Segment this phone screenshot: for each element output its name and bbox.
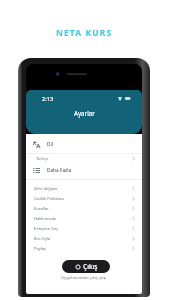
other: Language	[33, 141, 40, 148]
staticText: Şifre değiştir	[34, 186, 58, 191]
button[interactable]: Türkçe	[26, 153, 142, 163]
other: Wi-Fi	[118, 97, 122, 101]
staticText: Kurallar	[34, 206, 49, 211]
button[interactable]: Bizi Oyla	[26, 233, 142, 243]
other: Battery	[125, 97, 131, 100]
staticText: NETA KURS	[56, 27, 113, 39]
staticText: Ayarlar	[74, 109, 95, 117]
button[interactable]: Kurallar	[26, 203, 142, 213]
other: More	[33, 167, 40, 174]
staticText: Bizi Oyla	[34, 236, 51, 241]
staticText: Daha Fazla	[47, 167, 72, 173]
button[interactable]: İletişime Geç	[26, 223, 142, 233]
button[interactable]: Language	[26, 137, 142, 151]
staticText: Çıkış	[83, 262, 98, 271]
button[interactable]: More	[26, 163, 142, 177]
button[interactable]: Şifre değiştir	[26, 183, 142, 193]
staticText: Paylaş	[34, 246, 46, 251]
button[interactable]: Çıkış	[62, 260, 110, 273]
staticText: Gizlilik Politikası	[34, 196, 64, 201]
staticText: Dil	[47, 141, 53, 147]
button[interactable]: Hakkımızda	[26, 213, 142, 223]
button[interactable]: Gizlilik Politikası	[26, 193, 142, 203]
button[interactable]: Paylaş	[26, 243, 142, 253]
staticText: Türkçe	[36, 156, 49, 161]
staticText: Hakkımızda	[34, 216, 56, 221]
staticText: İletişime Geç	[34, 226, 59, 231]
staticText: 2:13	[42, 95, 54, 103]
staticText: Uygulamadan çıkış yap	[61, 275, 107, 281]
